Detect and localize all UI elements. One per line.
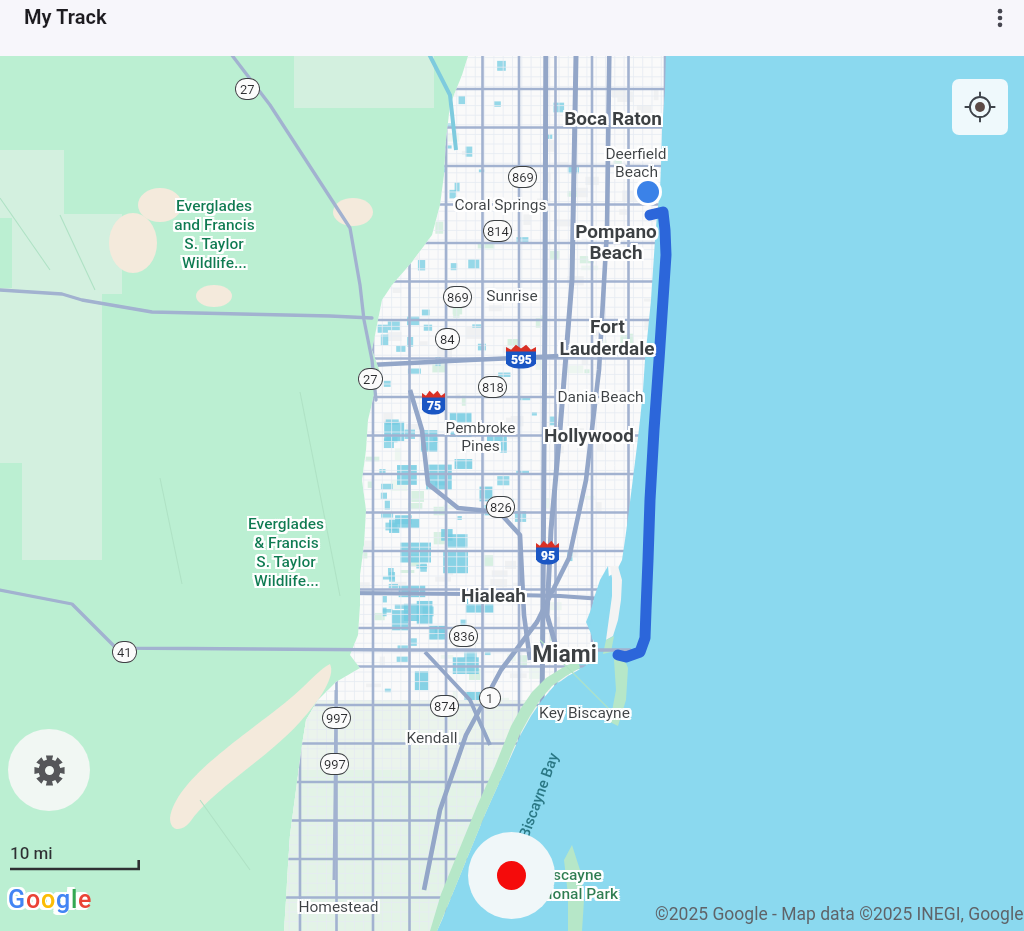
staticText: Pines (461, 437, 500, 455)
staticText: S. Taylor (258, 555, 318, 573)
staticText: Deerfield (607, 145, 669, 163)
staticText: Pompano (573, 220, 655, 242)
staticText: and Francis (174, 216, 255, 234)
staticText: and Francis (172, 214, 253, 232)
staticText: Google (8, 883, 88, 912)
staticText: 27 (240, 82, 255, 97)
staticText: Boca Raton (562, 109, 660, 131)
staticText: Fort (590, 317, 625, 339)
staticText: 997 (324, 757, 346, 772)
staticText: Coral Springs (452, 198, 545, 216)
staticText: Everglades (250, 517, 326, 535)
staticText: Deerfield (603, 145, 665, 163)
staticText: Everglades (174, 195, 250, 213)
staticText: Kendall (406, 731, 458, 749)
staticText: S. Taylor (182, 235, 242, 253)
staticText: & Francis (252, 536, 317, 554)
staticText: Wildlife... (254, 574, 319, 592)
staticText: 84 (440, 332, 455, 347)
staticText: Wildlife... (184, 256, 249, 274)
staticText: 814 (487, 224, 509, 239)
staticText: Pompano (577, 218, 659, 240)
staticText: Miami (534, 643, 599, 670)
staticText: & Francis (254, 532, 319, 550)
staticText: Miami (530, 639, 595, 666)
staticText: Kendall (406, 729, 458, 747)
staticText: Wildlife... (182, 256, 247, 274)
staticText: Google (10, 883, 90, 912)
staticText: & Francis (252, 534, 317, 552)
button[interactable]: Settings (8, 729, 90, 811)
staticText: Pembroke (443, 417, 514, 435)
staticText: Boca Raton (566, 109, 664, 131)
staticText: Google (6, 883, 86, 912)
staticText: Miami (530, 641, 595, 668)
staticText: Kendall (404, 727, 456, 745)
staticText: Biscayne (539, 866, 602, 884)
staticText: Sunrise (484, 285, 536, 303)
staticText: o (26, 885, 41, 914)
staticText: Lauderdale (561, 335, 657, 357)
staticText: Hollywood (544, 424, 634, 446)
staticText: Coral Springs (456, 196, 549, 214)
staticText: Coral Springs (456, 194, 549, 212)
staticText: Pines (461, 435, 500, 453)
staticText: Miami (534, 639, 599, 666)
staticText: Coral Springs (456, 198, 549, 216)
staticText: Key Biscayne (541, 704, 632, 722)
staticText: Lauderdale (557, 337, 653, 359)
staticText: Hollywood (544, 426, 634, 448)
staticText: Homestead (298, 896, 379, 914)
staticText: Kendall (404, 729, 456, 747)
staticText: Sunrise (488, 289, 540, 307)
staticText: Deerfield (603, 143, 665, 161)
staticText: Dania Beach (555, 388, 642, 406)
staticText: Pines (461, 439, 500, 457)
staticText: Key Biscayne (539, 702, 630, 720)
staticText: Beach (615, 163, 658, 181)
staticText: e (78, 885, 92, 914)
staticText: Hialeah (463, 586, 528, 608)
staticText: Key Biscayne (539, 704, 630, 722)
button[interactable]: My location (952, 79, 1008, 135)
staticText: Dania Beach (557, 390, 644, 408)
staticText: Beach (587, 241, 641, 263)
staticText: Sunrise (486, 287, 538, 305)
staticText: Beach (587, 239, 641, 261)
staticText: Lauderdale (561, 337, 657, 359)
staticText: 818 (482, 380, 504, 395)
staticText: Kendall (404, 731, 456, 749)
staticText: Hollywood (546, 426, 636, 448)
staticText: Lauderdale (557, 339, 653, 361)
staticText: Fort (590, 315, 625, 337)
staticText: Google (6, 887, 86, 916)
staticText: 826 (490, 500, 512, 515)
staticText: Sunrise (488, 285, 540, 303)
staticText: Fort (592, 315, 627, 337)
staticText: Kendall (408, 729, 460, 747)
staticText: Wildlife... (184, 254, 249, 272)
button[interactable]: More options (976, 0, 1024, 42)
staticText: Boca Raton (564, 105, 662, 127)
button[interactable]: Record (468, 832, 555, 919)
staticText: Homestead (296, 896, 377, 914)
staticText: S. Taylor (256, 555, 316, 573)
staticText: Miami (532, 639, 597, 666)
staticText: Hialeah (463, 582, 528, 604)
staticText: Lauderdale (559, 337, 655, 359)
staticText: Beach (613, 163, 656, 181)
staticText: Wildlife... (180, 254, 245, 272)
staticText: National Park (522, 885, 616, 903)
staticText: S. Taylor (258, 553, 318, 571)
staticText: Key Biscayne (539, 706, 630, 724)
staticText: Homestead (296, 900, 377, 918)
staticText: Key Biscayne (537, 704, 628, 722)
staticText: and Francis (174, 214, 255, 232)
staticText: Key Biscayne (537, 702, 628, 720)
staticText: Sunrise (484, 287, 536, 305)
staticText: Beach (617, 165, 660, 183)
staticText: Pembroke (443, 419, 514, 437)
staticText: National Park (526, 887, 620, 905)
staticText: Pembroke (445, 421, 516, 439)
staticText: Coral Springs (452, 194, 545, 212)
